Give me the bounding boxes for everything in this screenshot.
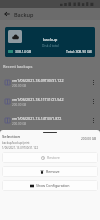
staticText: Backup [14, 11, 34, 18]
staticText: vm1/06/2021-13-14T33/1.872 [12, 116, 62, 121]
staticText: Selection [2, 134, 21, 140]
button[interactable]: Restore [2, 152, 98, 163]
staticText: vm1/06/2021-18-11T31/21.542 [12, 97, 64, 102]
staticText: 200.00 GB [12, 103, 27, 107]
staticText: Remove [46, 169, 60, 174]
button[interactable]: More options [89, 92, 98, 111]
staticText: vm1/06/2021-18-09T30/31.122 [12, 78, 64, 83]
staticText: 200.00 GB [81, 137, 97, 141]
staticText: Restore [47, 155, 60, 160]
staticText: Show Configuration [36, 183, 70, 188]
button[interactable]: Show Configuration [2, 180, 98, 191]
staticText: backup/backup/print [2, 141, 30, 145]
button[interactable]: More options [89, 111, 98, 130]
staticText: 1/06/2021-13-09T30/31.122 [2, 146, 39, 150]
button[interactable]: Back [0, 8, 14, 20]
staticText: Total: 308.90 GB [66, 49, 92, 54]
staticText: Disk 4 total [42, 44, 59, 48]
button[interactable]: vm1/06/2021-18-11T31/21.542 [0, 92, 100, 111]
button[interactable]: vm1/06/2021-13-14T33/1.872 [0, 111, 100, 130]
staticText: 308.14 GB [15, 49, 32, 54]
staticText: 200.00 GB [12, 122, 27, 126]
button[interactable]: Remove [2, 166, 98, 177]
staticText: backup [43, 37, 58, 43]
staticText: Recent backups [3, 64, 33, 69]
staticText: 200.00 GB [12, 84, 27, 88]
button[interactable]: vm1/06/2021-18-09T30/31.122 [0, 73, 100, 92]
button[interactable]: More options [89, 73, 98, 92]
button[interactable]: backup [5, 27, 95, 57]
